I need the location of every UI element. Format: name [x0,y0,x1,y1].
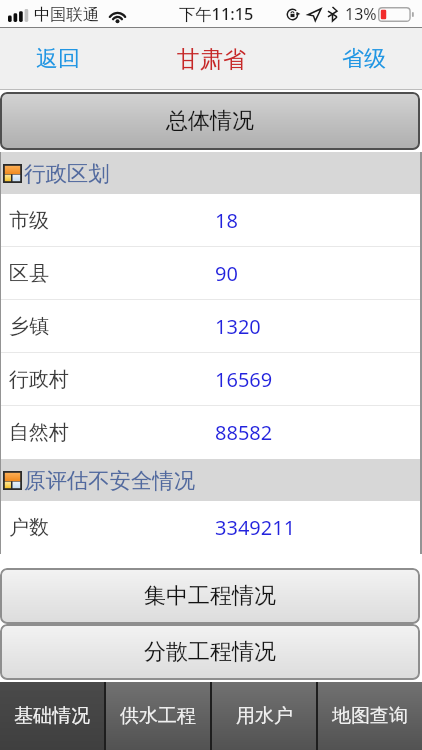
staticText: 18 [215,207,238,234]
staticText: 集中工程情况 [144,582,276,610]
staticText: 16569 [215,366,273,393]
staticText: 基础情况 [14,704,90,728]
staticText: 乡镇 [9,314,49,339]
staticText: 用水户 [236,704,293,728]
staticText: 中国联通 [34,4,100,25]
staticText: 市级 [9,208,49,233]
button[interactable]: 集中工程情况 [0,568,420,624]
button[interactable]: 市级 [0,194,422,246]
button[interactable]: 总体情况 [0,92,420,150]
staticText: 地图查询 [332,704,408,728]
button[interactable]: 自然村 [0,406,422,459]
button[interactable]: 区县 [0,247,422,299]
staticText: 返回 [36,45,80,73]
button[interactable]: 省级 [342,28,386,90]
staticText: 88582 [215,419,273,446]
button[interactable]: 用水户 [212,682,316,750]
staticText: 13% [345,3,377,25]
staticText: 3349211 [215,514,296,541]
staticText: 总体情况 [166,107,254,135]
staticText: 户数 [9,515,49,540]
staticText: 行政区划 [24,160,110,187]
button[interactable]: 户数 [0,501,422,554]
button[interactable]: 基础情况 [0,682,104,750]
button[interactable]: 地图查询 [318,682,422,750]
staticText: 下午11:15 [179,3,254,25]
staticText: 1320 [215,313,261,340]
button[interactable]: 乡镇 [0,300,422,352]
staticText: 自然村 [9,420,69,445]
staticText: 90 [215,260,238,287]
staticText: 省级 [342,45,386,73]
button[interactable]: 分散工程情况 [0,624,420,680]
button[interactable]: 供水工程 [106,682,210,750]
staticText: 分散工程情况 [144,638,276,666]
staticText: 甘肃省 [177,45,246,74]
staticText: 区县 [9,261,49,286]
staticText: 行政村 [9,367,69,392]
button[interactable]: 返回 [36,28,80,90]
staticText: 供水工程 [120,704,196,728]
button[interactable]: 行政村 [0,353,422,405]
staticText: 原评估不安全情况 [24,467,196,494]
